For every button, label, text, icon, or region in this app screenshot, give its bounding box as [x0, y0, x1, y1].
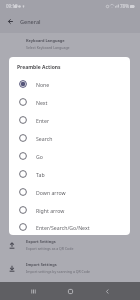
button[interactable]: Keyboard Language — [0, 37, 140, 51]
staticText: Enter — [36, 117, 50, 124]
button[interactable]: Recent apps — [26, 284, 40, 298]
staticText: Down arrow — [36, 189, 66, 196]
button[interactable]: Import Settings — [0, 261, 140, 275]
staticText: None — [36, 81, 50, 88]
staticText: General — [20, 18, 41, 25]
button[interactable]: None — [9, 75, 130, 93]
staticText: Tab — [36, 171, 45, 178]
staticText: Enter/Search/Go/Next — [36, 224, 90, 231]
staticText: Export settings as a QR Code — [26, 246, 74, 251]
staticText: Export Settings — [26, 239, 56, 244]
staticText: Import settings by scanning a QR Code — [26, 269, 91, 274]
button[interactable]: Down arrow — [9, 183, 130, 201]
button[interactable]: Tab — [9, 165, 130, 183]
button[interactable]: Enter/Search/Go/Next — [9, 219, 130, 235]
button[interactable]: Home — [63, 284, 77, 298]
button[interactable]: Go — [9, 147, 130, 165]
staticText: Keyboard Language — [26, 38, 65, 43]
staticText: 78% — [120, 3, 129, 9]
button[interactable]: Preamble Actions — [9, 57, 130, 235]
button[interactable]: Export Settings — [0, 238, 140, 252]
button[interactable]: Enter — [9, 111, 130, 129]
staticText: Right arrow — [36, 207, 65, 214]
staticText: 09:19 — [6, 3, 18, 9]
button[interactable]: Back — [4, 17, 16, 29]
staticText: Go — [36, 153, 43, 160]
button[interactable]: Search — [9, 129, 130, 147]
staticText: Preamble Actions — [17, 64, 61, 71]
button[interactable]: Next — [9, 93, 130, 111]
button[interactable]: Back — [100, 284, 114, 298]
staticText: Import Settings — [26, 262, 57, 267]
staticText: Select Keyboard Language — [26, 45, 70, 50]
button[interactable]: Right arrow — [9, 201, 130, 219]
staticText: Search — [36, 135, 53, 142]
staticText: Next — [36, 99, 48, 106]
